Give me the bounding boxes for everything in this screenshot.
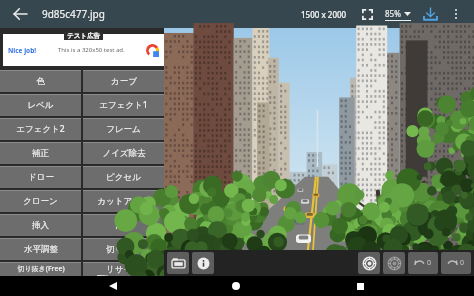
button[interactable]: Open folder [167,252,189,274]
button[interactable]: Information [192,252,214,274]
button[interactable]: レベル [0,94,81,116]
button[interactable]: Back [103,276,123,296]
button[interactable]: Nice job! [3,34,164,66]
staticText: テスト広告 [67,32,100,40]
button[interactable]: 切り抜き [83,238,164,260]
staticText: 色 [36,76,45,87]
staticText: This is a 320x50 test ad. [58,46,125,54]
staticText: 85% [385,8,401,19]
staticText: 1500 x 2000 [301,9,347,20]
button[interactable]: エフェクト1 [83,94,164,116]
button[interactable]: Recents [350,276,370,296]
staticText: ノイズ除去 [102,148,146,159]
button[interactable]: 85% [385,8,411,21]
button[interactable]: 補正 [0,142,81,164]
staticText: 挿入 [32,220,49,231]
staticText: レベル [27,100,54,111]
button[interactable]: 色 [0,70,81,92]
button[interactable]: Brush hardness [383,252,405,274]
staticText: 回転 [115,220,132,231]
button[interactable]: 挿入 [0,214,81,236]
button[interactable]: カットアウト [83,190,164,212]
staticText: 切り抜き [106,244,141,255]
staticText: 補正 [32,148,49,159]
staticText: Nice job! [8,46,37,55]
button[interactable]: フレーム [83,118,164,140]
staticText: ピクセル [106,172,141,183]
staticText: クローン [23,196,58,207]
button[interactable]: Fit to screen [357,4,377,24]
button[interactable]: カーブ [83,70,164,92]
button[interactable]: クローン [0,190,81,212]
button[interactable]: Save [420,4,440,24]
staticText: カットアウト [97,196,150,207]
staticText: 水平調整 [24,244,58,255]
button[interactable]: Undo [408,252,438,274]
button[interactable]: More options [446,4,466,24]
staticText: 0 [427,258,432,268]
staticText: ドロー [28,172,54,183]
staticText: エフェクト2 [16,123,65,135]
button[interactable]: Home [226,276,246,296]
staticText: カーブ [111,76,137,87]
button[interactable]: ピクセル [83,166,164,188]
staticText: エフェクト1 [99,99,148,111]
staticText: フレーム [106,124,141,135]
staticText: リサイズ [106,264,141,275]
button[interactable]: 水平調整 [0,238,81,260]
staticText: 切り抜き(Free) [17,264,65,274]
button[interactable]: Redo [441,252,471,274]
button[interactable]: リサイズ [83,262,164,276]
button[interactable]: Back [8,2,32,26]
staticText: 9d85c477.jpg [42,7,105,21]
button[interactable]: ドロー [0,166,81,188]
staticText: 0 [460,258,465,268]
button[interactable]: ノイズ除去 [83,142,164,164]
button[interactable]: 切り抜き(Free) [0,262,81,276]
button[interactable]: 回転 [83,214,164,236]
button[interactable]: Brush size [358,252,380,274]
button[interactable]: エフェクト2 [0,118,81,140]
